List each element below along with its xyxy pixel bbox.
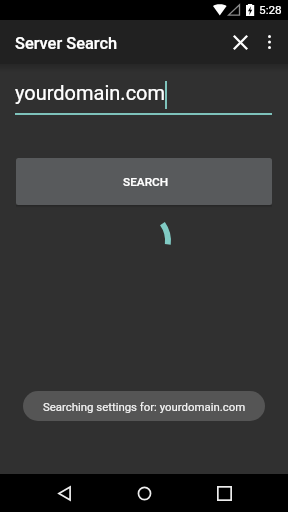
button[interactable]: More options xyxy=(249,23,288,61)
staticText: Searching settings for: yourdomain.com xyxy=(43,400,246,413)
staticText: Server Search xyxy=(15,34,118,53)
button[interactable]: Home xyxy=(120,474,168,512)
staticText: SEARCH xyxy=(123,175,169,189)
button[interactable]: SEARCH xyxy=(16,158,272,205)
button[interactable]: Recent apps xyxy=(200,474,248,512)
staticText: yourdomain.com xyxy=(15,81,166,104)
staticText: 5:28 xyxy=(259,3,282,17)
button[interactable]: Close xyxy=(220,22,260,62)
button[interactable]: Back xyxy=(40,474,88,512)
